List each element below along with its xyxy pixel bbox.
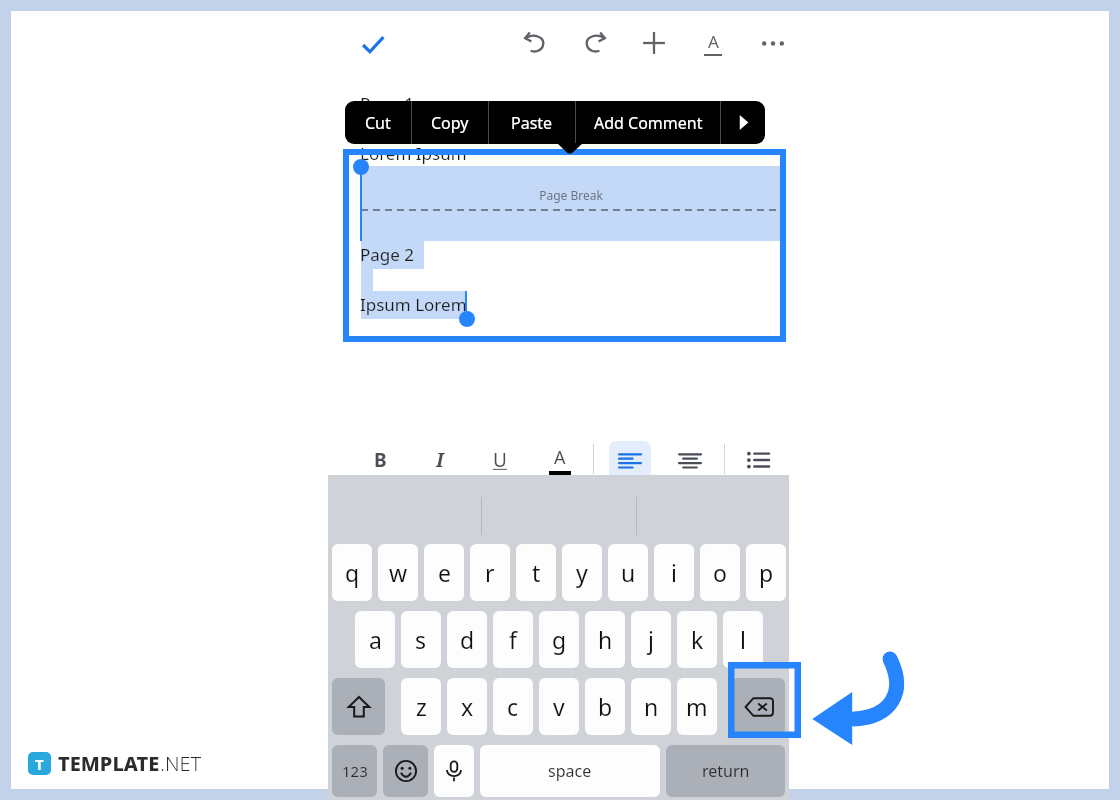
staticText: f xyxy=(509,624,517,655)
button[interactable]: Backspace xyxy=(732,678,785,735)
staticText: h xyxy=(598,624,613,655)
button[interactable]: g xyxy=(539,611,579,668)
button[interactable]: z xyxy=(401,678,441,735)
staticText: g xyxy=(552,624,567,655)
button[interactable]: Space xyxy=(480,745,660,797)
staticText: u xyxy=(621,557,636,588)
button[interactable]: b xyxy=(585,678,625,735)
staticText: w xyxy=(389,557,408,588)
button[interactable]: Dictate xyxy=(434,745,474,797)
staticText: t xyxy=(532,557,541,588)
staticText: Copy xyxy=(431,112,469,134)
button[interactable]: m xyxy=(677,678,717,735)
staticText: Cut xyxy=(365,112,391,134)
button[interactable]: More options xyxy=(749,19,797,67)
button[interactable]: x xyxy=(447,678,487,735)
staticText: Ipsum Lorem xyxy=(360,293,467,316)
button[interactable]: Text color xyxy=(539,439,581,481)
staticText: U xyxy=(493,447,507,473)
button[interactable]: Bold xyxy=(359,439,401,481)
button[interactable]: d xyxy=(447,611,487,668)
button[interactable]: Numbers xyxy=(332,745,377,797)
staticText: e xyxy=(438,557,451,588)
staticText: I xyxy=(436,447,444,473)
staticText: .NET xyxy=(160,750,202,777)
staticText: return xyxy=(702,760,750,782)
button[interactable]: f xyxy=(493,611,533,668)
staticText: i xyxy=(671,557,677,588)
staticText: m xyxy=(686,691,708,722)
button[interactable]: Text format xyxy=(689,19,737,67)
button[interactable]: l xyxy=(723,611,763,668)
staticText: o xyxy=(713,557,727,588)
button[interactable]: e xyxy=(424,544,464,601)
button[interactable]: Copy xyxy=(412,101,488,144)
button[interactable]: c xyxy=(493,678,533,735)
button[interactable]: Add Comment xyxy=(576,101,720,144)
staticText: l xyxy=(740,624,746,655)
staticText: y xyxy=(576,557,588,588)
staticText: s xyxy=(415,624,427,655)
button[interactable]: Cut xyxy=(345,101,411,144)
staticText: q xyxy=(345,557,360,588)
button[interactable]: y xyxy=(562,544,602,601)
staticText: B xyxy=(374,447,387,473)
staticText: c xyxy=(507,691,519,722)
staticText: 123 xyxy=(342,761,368,781)
button[interactable]: Done xyxy=(349,21,397,69)
button[interactable]: Shift xyxy=(332,678,385,735)
staticText: Page 2 xyxy=(360,243,415,266)
button[interactable]: j xyxy=(631,611,671,668)
staticText: Add Comment xyxy=(594,112,703,134)
staticText: x xyxy=(461,691,474,722)
button[interactable]: Undo xyxy=(511,19,559,67)
button[interactable]: p xyxy=(746,544,786,601)
staticText: r xyxy=(485,557,495,588)
button[interactable]: Paste xyxy=(489,101,575,144)
staticText: Page Break xyxy=(361,187,781,203)
button[interactable]: t xyxy=(516,544,556,601)
staticText: A xyxy=(708,30,719,53)
button[interactable]: w xyxy=(378,544,418,601)
staticText: TEMPLATE xyxy=(58,750,160,777)
staticText: j xyxy=(648,624,654,655)
button[interactable]: v xyxy=(539,678,579,735)
button[interactable]: o xyxy=(700,544,740,601)
button[interactable]: Align center xyxy=(669,441,711,483)
button[interactable]: u xyxy=(608,544,648,601)
button[interactable]: q xyxy=(332,544,372,601)
staticText: n xyxy=(644,691,659,722)
button[interactable]: a xyxy=(355,611,395,668)
staticText: z xyxy=(416,691,427,722)
button[interactable]: Return xyxy=(666,745,785,797)
button[interactable]: n xyxy=(631,678,671,735)
staticText: a xyxy=(369,624,382,655)
button[interactable]: Redo xyxy=(571,19,619,67)
staticText: b xyxy=(598,691,613,722)
staticText: Lorem Ipsum xyxy=(360,142,467,165)
button[interactable]: i xyxy=(654,544,694,601)
staticText: Paste xyxy=(511,112,553,134)
staticText: space xyxy=(548,760,592,782)
button[interactable]: Align left xyxy=(609,441,651,483)
button[interactable]: Emoji xyxy=(383,745,428,797)
staticText: v xyxy=(553,691,565,722)
button[interactable]: k xyxy=(677,611,717,668)
button[interactable]: r xyxy=(470,544,510,601)
button[interactable]: Insert xyxy=(630,19,678,67)
staticText: Page 1 xyxy=(360,92,415,115)
button[interactable]: s xyxy=(401,611,441,668)
button[interactable]: Bulleted list xyxy=(737,441,779,483)
staticText: A xyxy=(554,445,566,470)
staticText: p xyxy=(759,557,774,588)
button[interactable]: Underline xyxy=(479,439,521,481)
button[interactable]: Italic xyxy=(419,439,461,481)
staticText: T xyxy=(35,754,44,774)
staticText: k xyxy=(691,624,704,655)
button[interactable]: More xyxy=(721,101,765,144)
staticText: d xyxy=(460,624,475,655)
button[interactable]: h xyxy=(585,611,625,668)
